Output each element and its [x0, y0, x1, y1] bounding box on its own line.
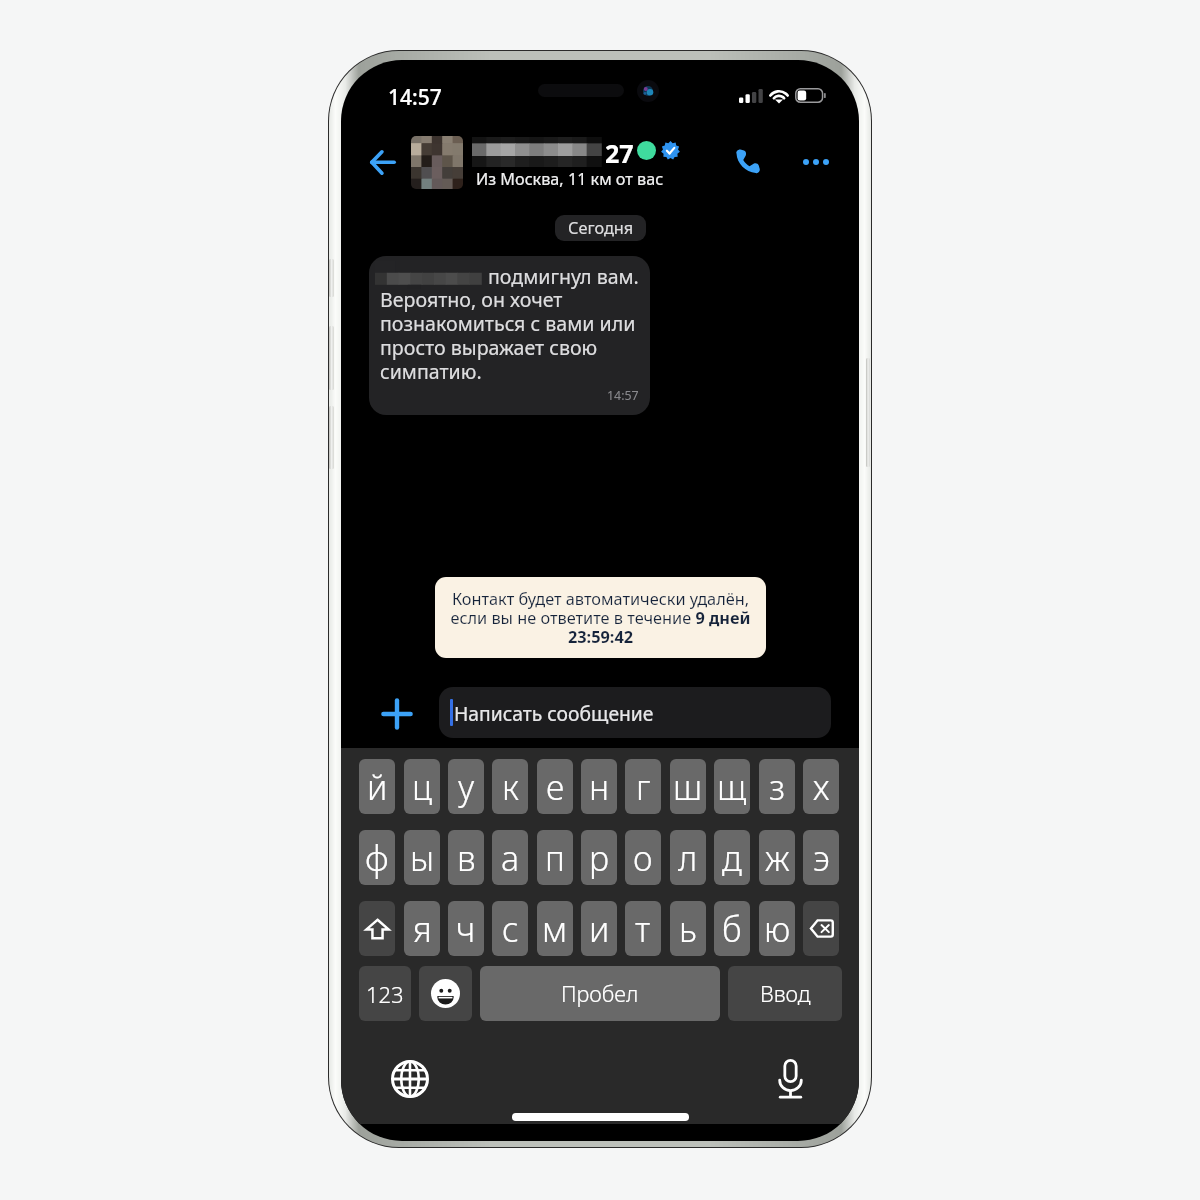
button[interactable]: п	[537, 830, 573, 885]
staticText: т	[635, 906, 651, 952]
staticText: Контакт будет автоматически удалён, если…	[435, 588, 766, 647]
staticText: Вероятно, он хочет познакомиться с вами …	[380, 286, 636, 385]
button[interactable]: с	[492, 901, 528, 956]
staticText: ю	[764, 906, 791, 952]
button[interactable]: о	[625, 830, 661, 885]
staticText: ж	[765, 835, 790, 881]
button[interactable]: Call	[724, 138, 770, 184]
staticText: г	[636, 764, 651, 810]
button[interactable]: в	[448, 830, 484, 885]
staticText: 14:57	[388, 83, 442, 112]
staticText: ч	[456, 906, 476, 952]
button[interactable]: ж	[759, 830, 795, 885]
staticText: ы	[410, 835, 435, 881]
staticText: х	[813, 764, 830, 810]
button[interactable]: з	[759, 759, 795, 814]
staticText: щ	[717, 764, 747, 810]
button[interactable]: е	[537, 759, 573, 814]
staticText: Ввод	[760, 979, 811, 1009]
staticText: д	[722, 835, 742, 881]
button[interactable]: ч	[448, 901, 484, 956]
button[interactable]: г	[625, 759, 661, 814]
staticText: Написать сообщение	[454, 700, 654, 726]
button[interactable]: к	[492, 759, 528, 814]
staticText: и	[589, 906, 610, 952]
staticText: л	[678, 835, 698, 881]
button[interactable]: Backspace	[803, 901, 839, 956]
button[interactable]: Switch keyboard	[386, 1055, 433, 1102]
staticText: о	[633, 835, 653, 881]
staticText: м	[542, 906, 568, 952]
button[interactable]: Voice input	[767, 1055, 814, 1102]
button[interactable]: 123	[359, 966, 411, 1021]
staticText: ц	[412, 764, 433, 810]
button[interactable]: л	[670, 830, 706, 885]
button[interactable]: э	[803, 830, 839, 885]
staticText: ь	[679, 906, 697, 952]
staticText: а	[501, 835, 520, 881]
button[interactable]: й	[359, 759, 395, 814]
button[interactable]: ц	[404, 759, 440, 814]
button[interactable]: м	[537, 901, 573, 956]
staticText: 27	[605, 136, 634, 170]
staticText: з	[769, 764, 785, 810]
staticText: у	[458, 764, 475, 810]
button[interactable]: Back	[360, 139, 406, 185]
staticText: с	[502, 906, 519, 952]
staticText: э	[813, 835, 830, 881]
button[interactable]: а	[492, 830, 528, 885]
staticText: Сегодня	[568, 217, 634, 239]
button[interactable]: Add attachment	[374, 691, 420, 737]
button[interactable]: щ	[714, 759, 750, 814]
button[interactable]: б	[714, 901, 750, 956]
button[interactable]: д	[714, 830, 750, 885]
staticText: р	[589, 835, 610, 881]
staticText: й	[367, 764, 388, 810]
staticText: б	[722, 906, 742, 952]
button[interactable]: Ввод	[728, 966, 842, 1021]
button[interactable]: ь	[670, 901, 706, 956]
button[interactable]: я	[404, 901, 440, 956]
button[interactable]: More options	[790, 136, 842, 188]
button[interactable]: н	[581, 759, 617, 814]
button[interactable]: ы	[404, 830, 440, 885]
staticText: ш	[673, 764, 703, 810]
staticText: Пробел	[561, 979, 639, 1009]
button[interactable]: р	[581, 830, 617, 885]
button[interactable]: и	[581, 901, 617, 956]
button[interactable]: Emoji	[419, 966, 472, 1021]
staticText: е	[546, 764, 565, 810]
button[interactable]: т	[625, 901, 661, 956]
button[interactable]: Контакт будет автоматически удалён, если…	[435, 577, 766, 658]
button[interactable]: у	[448, 759, 484, 814]
button[interactable]: Open profile	[409, 132, 714, 192]
button[interactable]: ф	[359, 830, 395, 885]
staticText: 123	[366, 979, 404, 1009]
button[interactable]: Пробел	[480, 966, 720, 1021]
staticText: к	[502, 764, 519, 810]
button[interactable]: Shift	[359, 901, 395, 956]
staticText: подмигнул вам.	[488, 263, 639, 290]
staticText: Из Москва, 11 км от вас	[476, 168, 664, 190]
button[interactable]: Сегодня	[555, 215, 646, 241]
button[interactable]: х	[803, 759, 839, 814]
button[interactable]: ш	[670, 759, 706, 814]
staticText: н	[589, 764, 610, 810]
staticText: я	[413, 906, 432, 952]
button[interactable]: Написать сообщение	[439, 687, 831, 738]
staticText: 14:57	[607, 387, 639, 404]
button[interactable]: ю	[759, 901, 795, 956]
button[interactable]: подмигнул вам.	[369, 256, 650, 415]
staticText: ф	[365, 835, 389, 881]
staticText: в	[457, 835, 476, 881]
staticText: п	[545, 835, 565, 881]
